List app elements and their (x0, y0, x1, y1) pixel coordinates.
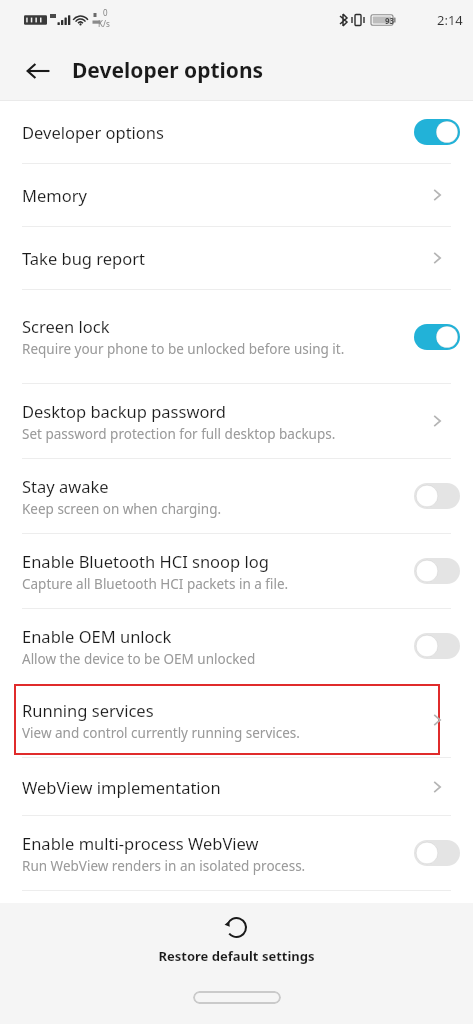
button[interactable]: Desktop backup password (0, 384, 473, 458)
button[interactable]: Screen lock (0, 290, 473, 383)
staticText: 2:14 (437, 11, 463, 29)
button[interactable]: Stay awake (0, 459, 473, 533)
staticText: Enable OEM unlock (22, 625, 172, 647)
button[interactable]: WebView implementation (0, 758, 473, 815)
staticText: View and control currently running servi… (22, 724, 300, 742)
staticText: Keep screen on when charging. (22, 500, 222, 518)
button[interactable]: Restore default settings (134, 912, 339, 967)
staticText: WebView implementation (22, 776, 221, 798)
staticText: Screen lock (22, 315, 110, 337)
staticText: 93 (385, 15, 395, 26)
staticText: Run WebView renders in an isolated proce… (22, 857, 306, 875)
button[interactable]: Take bug report (0, 227, 473, 289)
staticText: Require your phone to be unlocked before… (22, 340, 345, 358)
staticText: Stay awake (22, 475, 109, 497)
staticText: Set password protection for full desktop… (22, 425, 336, 443)
button[interactable]: Enable multi-process WebView (0, 816, 473, 890)
staticText: Enable Bluetooth HCI snoop log (22, 550, 269, 572)
staticText: K/s (98, 18, 110, 29)
staticText: Allow the device to be OEM unlocked (22, 650, 256, 668)
button[interactable]: Developer options (0, 101, 473, 163)
staticText: Take bug report (22, 247, 145, 269)
button[interactable]: Running services (0, 683, 473, 757)
staticText: 0 (103, 7, 108, 18)
staticText: Capture all Bluetooth HCI packets in a f… (22, 575, 289, 593)
button[interactable]: Enable Bluetooth HCI snoop log (0, 534, 473, 608)
button[interactable]: Back (14, 47, 62, 95)
staticText: Developer options (22, 121, 164, 143)
staticText: Desktop backup password (22, 400, 227, 422)
staticText: Running services (22, 699, 154, 721)
staticText: Restore default settings (158, 947, 315, 965)
staticText: Developer options (72, 56, 264, 85)
button[interactable]: Memory (0, 164, 473, 226)
button[interactable]: Enable OEM unlock (0, 609, 473, 683)
staticText: Memory (22, 184, 87, 206)
staticText: Enable multi-process WebView (22, 832, 259, 854)
